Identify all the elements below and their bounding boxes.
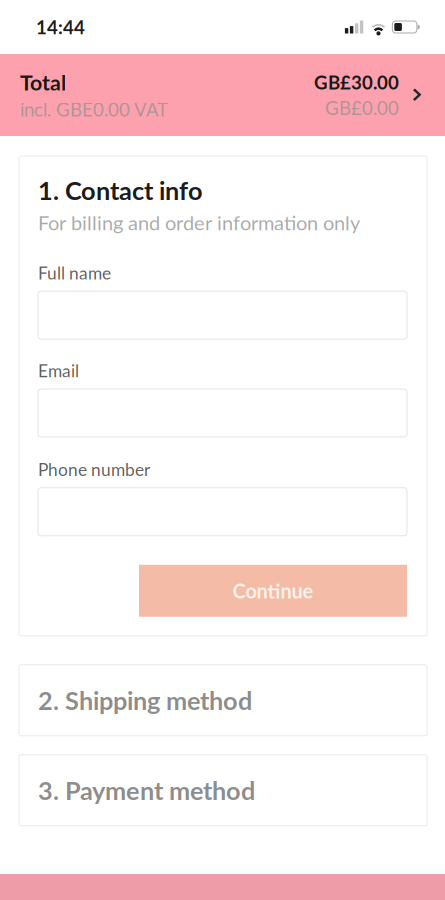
staticText: 14:44	[36, 16, 85, 38]
staticText: Full name	[38, 262, 111, 283]
staticText: 3. Payment method	[38, 775, 255, 805]
staticText: GB£0.00	[325, 96, 399, 119]
staticText: 2. Shipping method	[38, 685, 252, 715]
staticText: Email	[38, 360, 79, 381]
staticText: Total	[20, 69, 66, 95]
staticText: For billing and order information only	[38, 210, 360, 234]
staticText: incl. GBE0.00 VAT	[20, 98, 168, 120]
button[interactable]: Total	[0, 54, 445, 136]
staticText: Continue	[232, 579, 313, 603]
button[interactable]: 2. Shipping method	[19, 665, 427, 736]
button[interactable]: Continue	[139, 565, 407, 617]
button[interactable]: 3. Payment method	[19, 755, 427, 826]
staticText: 1. Contact info	[38, 175, 203, 205]
staticText: GB£30.00	[314, 71, 399, 93]
staticText: Phone number	[38, 459, 150, 480]
